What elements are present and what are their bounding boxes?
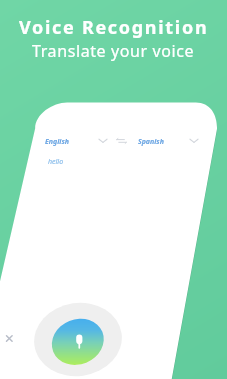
staticText: hello — [48, 157, 64, 167]
button[interactable]: Spanish — [138, 137, 164, 147]
button[interactable]: Start voice recording — [52, 318, 104, 370]
button[interactable]: English — [45, 137, 69, 147]
staticText: Translate your voice — [32, 40, 195, 62]
staticText: Voice Recognition — [19, 15, 209, 40]
button[interactable]: Close — [3, 332, 16, 345]
